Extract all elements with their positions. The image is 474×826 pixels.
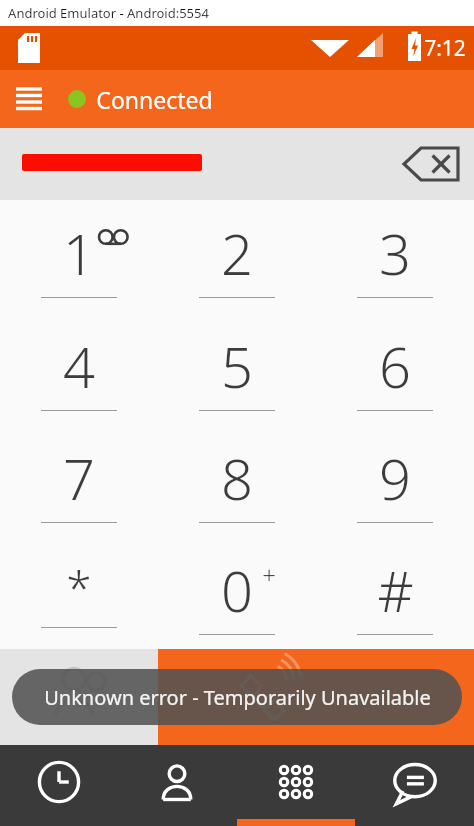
- button[interactable]: Open navigation menu: [0, 70, 58, 128]
- staticText: *: [66, 556, 92, 619]
- button[interactable]: Messages: [355, 745, 474, 826]
- staticText: +: [262, 558, 276, 591]
- button[interactable]: *: [0, 537, 158, 649]
- staticText: 4: [63, 328, 95, 404]
- staticText: 7: [63, 440, 95, 516]
- button[interactable]: Backspace: [396, 137, 466, 191]
- button[interactable]: Contacts: [118, 745, 236, 826]
- button[interactable]: 7: [0, 425, 158, 537]
- button[interactable]: 0: [158, 537, 316, 649]
- staticText: 6: [379, 328, 411, 404]
- button[interactable]: #: [316, 537, 474, 649]
- button[interactable]: Dialpad: [236, 745, 355, 826]
- staticText: Connected: [96, 84, 213, 115]
- staticText: 8: [221, 440, 253, 516]
- button[interactable]: 1: [0, 200, 158, 313]
- button[interactable]: 6: [316, 313, 474, 425]
- staticText: #: [377, 552, 414, 628]
- button[interactable]: 5: [158, 313, 316, 425]
- staticText: 9: [379, 440, 411, 516]
- staticText: 7:12: [424, 34, 466, 63]
- staticText: 0: [221, 552, 253, 628]
- button[interactable]: 4: [0, 313, 158, 425]
- button[interactable]: 2: [158, 200, 316, 313]
- staticText: Unknown error - Temporarily Unavailable: [44, 684, 431, 711]
- button[interactable]: Recent calls: [0, 745, 118, 826]
- button[interactable]: 3: [316, 200, 474, 313]
- staticText: Android Emulator - Android:5554: [8, 4, 209, 22]
- button[interactable]: 8: [158, 425, 316, 537]
- button[interactable]: 9: [316, 425, 474, 537]
- staticText: 3: [379, 215, 411, 291]
- staticText: 1: [63, 215, 95, 291]
- staticText: 2: [221, 215, 253, 291]
- staticText: 5: [221, 328, 253, 404]
